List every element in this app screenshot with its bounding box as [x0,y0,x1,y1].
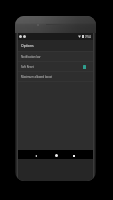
staticText: Notification bar [21,55,41,59]
button[interactable]: Back [26,150,46,159]
button[interactable]: Soft Reset [18,62,93,71]
button[interactable]: Maximum allowed boost [18,72,93,81]
button[interactable]: Recents [64,150,84,159]
staticText: 7:54 [85,35,91,39]
staticText: Maximum allowed boost [21,75,53,79]
button[interactable]: Home [46,150,66,159]
staticText: Options [21,43,34,48]
button[interactable]: Notification bar [18,52,93,61]
staticText: Soft Reset [21,65,34,69]
